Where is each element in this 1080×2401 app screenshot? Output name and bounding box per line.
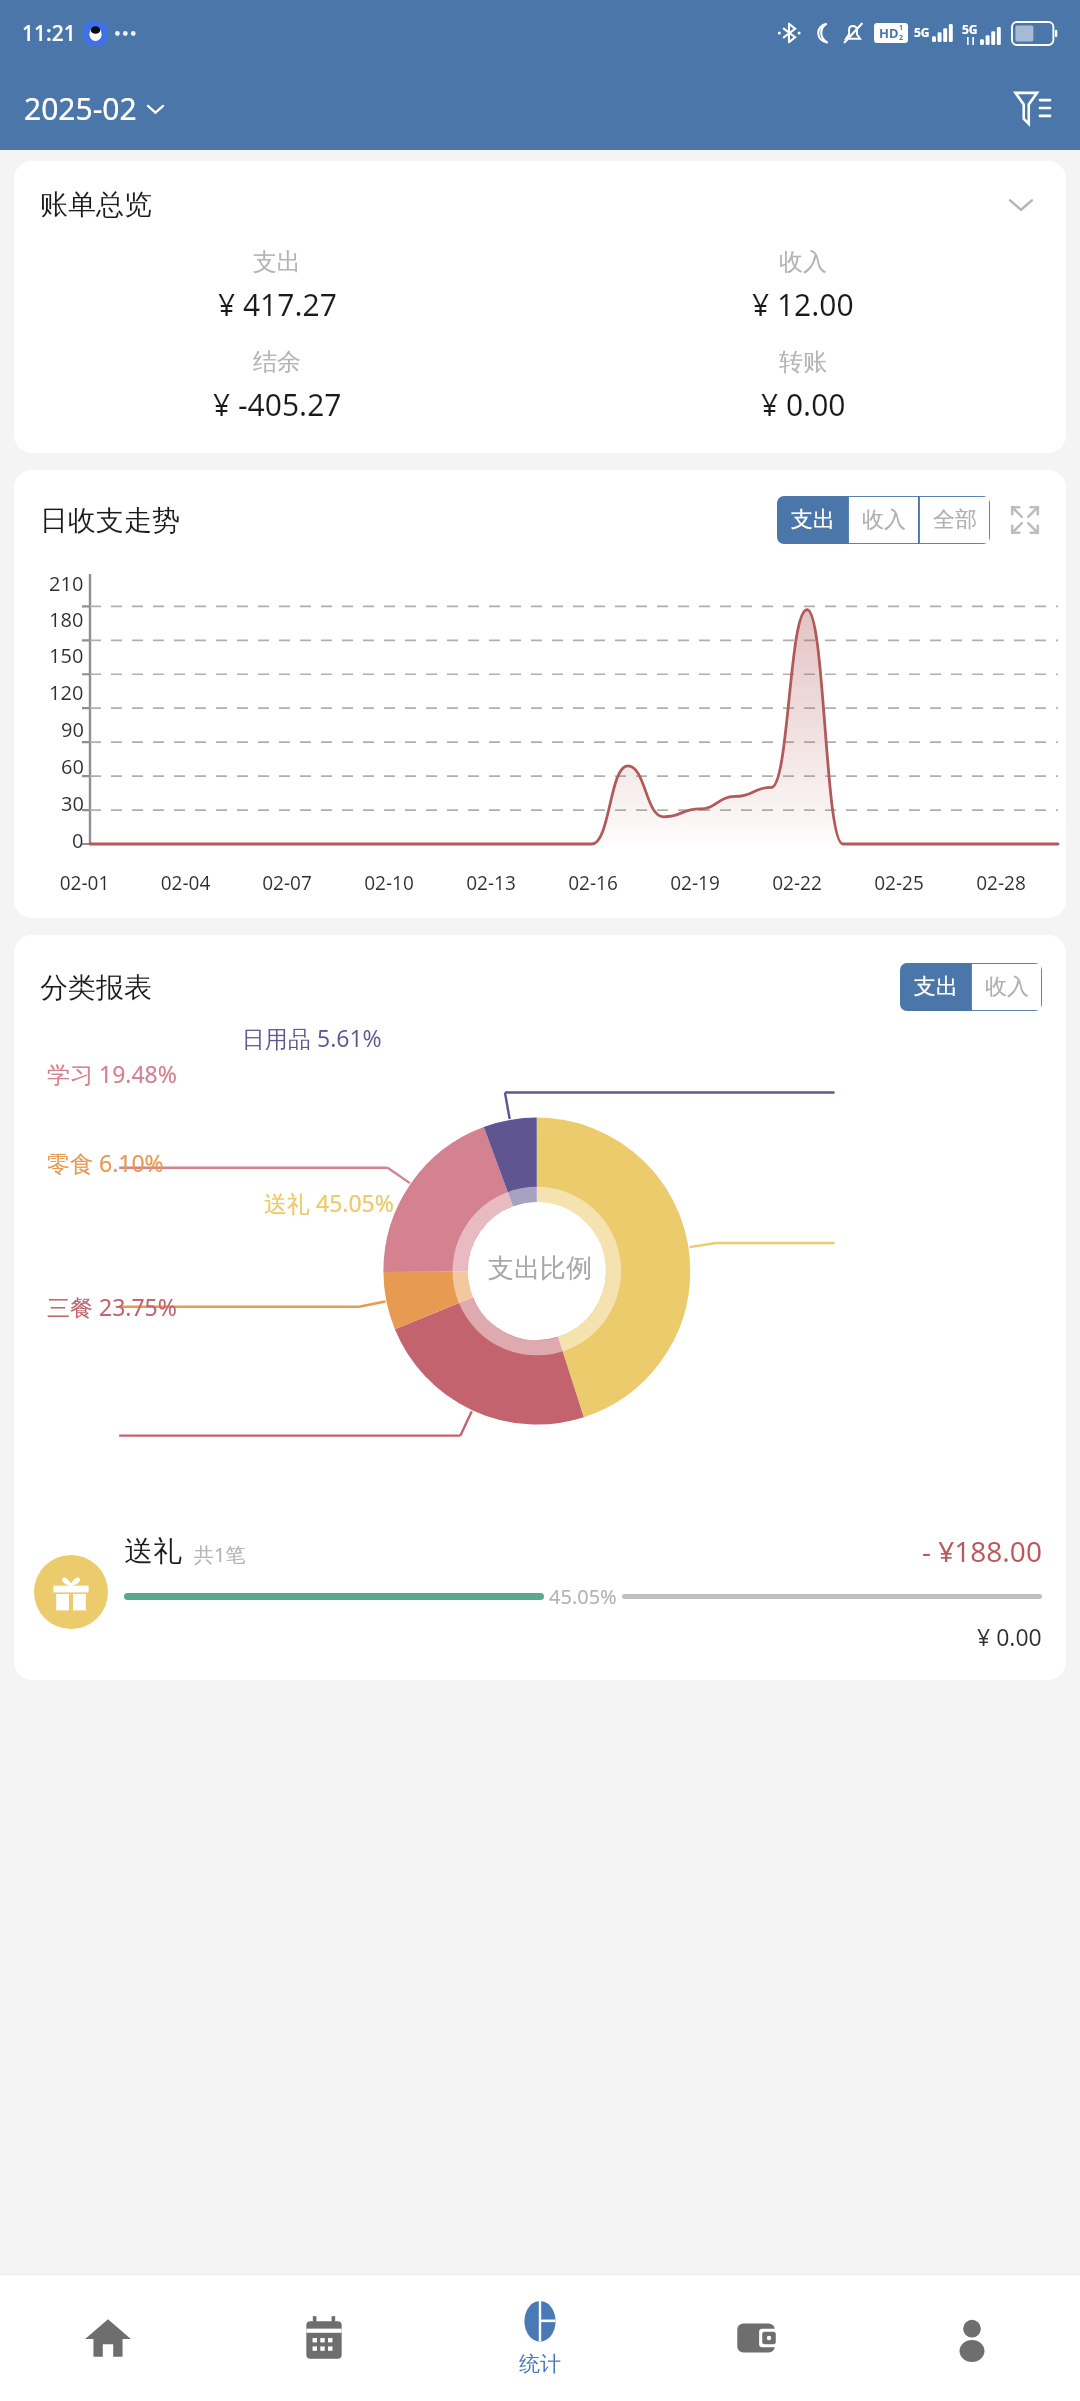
button[interactable]: 收入 [971,963,1042,1011]
staticText: ¥ 417.27 [218,284,337,325]
staticText: 30 [61,790,84,817]
button[interactable]: 支出 [777,496,848,544]
staticText: 02-25 [848,870,950,896]
staticText: 共1笔 [194,1541,246,1568]
staticText: 全部 [933,506,977,534]
button[interactable]: 收入 [848,496,919,544]
staticText: 日用品 5.61% [242,1022,382,1053]
button[interactable]: 2025-02 [20,84,169,133]
staticText: 02-01 [34,870,135,896]
staticText: 0 [72,827,84,854]
staticText: 转账 [779,347,827,377]
staticText: 送礼 [124,1533,182,1570]
button[interactable]: Wallet [648,2275,864,2401]
staticText: 结余 [253,347,301,377]
staticText: 150 [49,642,84,669]
staticText: 02-16 [542,870,644,896]
staticText: - ¥188.00 [922,1532,1042,1570]
staticText: HD [879,24,899,42]
staticText: ¥ 12.00 [752,284,854,325]
staticText: 45.05% [549,1583,617,1610]
staticText: 支出 [914,973,958,1001]
staticText: 180 [49,606,84,633]
staticText: ¥ -405.27 [213,384,342,425]
button[interactable]: Calendar [216,2275,432,2401]
button[interactable]: 统计 [432,2275,648,2401]
button[interactable]: Profile [864,2275,1080,2401]
button[interactable]: 送礼 [14,1526,1066,1658]
button[interactable]: 支出 [900,963,971,1011]
staticText: 210 [49,570,84,597]
staticText: 02-10 [338,870,440,896]
button[interactable]: 账单总览 [14,161,1066,453]
staticText: 支出 [253,247,301,277]
staticText: 支出 [791,506,835,534]
staticText: 零食 6.10% [47,1147,164,1178]
staticText: 5G [962,21,978,37]
staticText: 2 [899,33,904,43]
button[interactable]: Fullscreen [1006,501,1044,539]
staticText: 02-28 [950,870,1052,896]
button[interactable]: Filter [1004,80,1060,136]
staticText: ¥ 0.00 [977,1621,1042,1652]
staticText: 5G [914,24,930,40]
staticText: 支出比例 [488,1252,592,1285]
staticText: 02-13 [440,870,542,896]
staticText: 三餐 23.75% [47,1291,177,1322]
staticText: 收入 [985,973,1029,1001]
staticText: ¥ 0.00 [761,384,846,425]
button[interactable]: 全部 [919,496,990,544]
staticText: 收入 [779,247,827,277]
staticText: 日收支走势 [40,503,180,538]
staticText: 02-22 [746,870,848,896]
staticText: 11:21 [22,19,76,48]
staticText: 02-19 [644,870,746,896]
staticText: 02-04 [135,870,236,896]
button[interactable]: Home [0,2275,216,2401]
staticText: 1 [899,23,904,33]
staticText: 90 [61,716,84,743]
staticText: 学习 19.48% [47,1058,177,1089]
staticText: 2025-02 [24,88,137,129]
button[interactable]: Collapse [1002,185,1040,223]
staticText: 送礼 45.05% [264,1187,394,1218]
staticText: 分类报表 [40,970,152,1005]
staticText: 统计 [519,2351,561,2377]
staticText: 02-07 [236,870,338,896]
staticText: 收入 [862,506,906,534]
staticText: 60 [61,753,84,780]
staticText: 120 [49,679,84,706]
staticText: 账单总览 [40,187,152,222]
